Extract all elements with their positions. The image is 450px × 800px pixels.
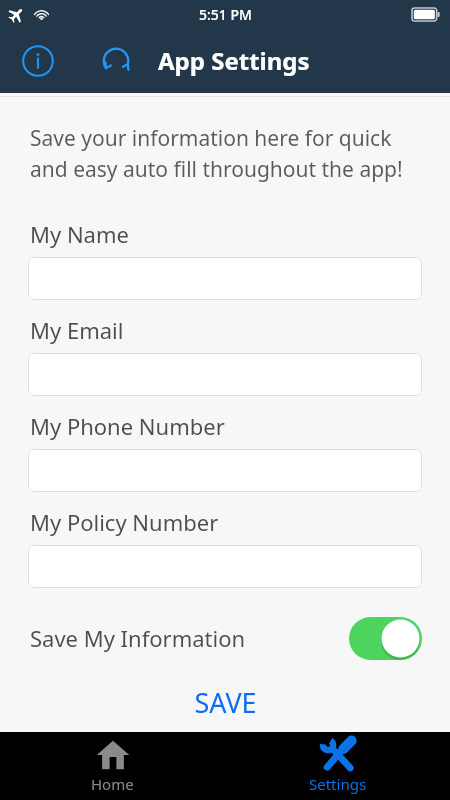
- button[interactable]: SAVE: [0, 684, 450, 724]
- button[interactable]: Information: [14, 37, 62, 85]
- button[interactable]: Save My Information toggle: [349, 617, 422, 660]
- staticText: My Policy Number: [30, 507, 219, 537]
- button[interactable]: [28, 449, 422, 492]
- button[interactable]: Settings: [225, 732, 450, 800]
- staticText: Settings: [309, 774, 367, 794]
- button[interactable]: [28, 545, 422, 588]
- staticText: Home: [91, 774, 134, 794]
- staticText: My Phone Number: [30, 411, 225, 441]
- button[interactable]: [28, 353, 422, 396]
- staticText: SAVE: [194, 684, 257, 721]
- staticText: App Settings: [158, 44, 310, 77]
- staticText: My Name: [30, 219, 129, 249]
- staticText: Save your information here for quick and…: [30, 124, 424, 183]
- button[interactable]: Home: [0, 732, 225, 800]
- button[interactable]: [28, 257, 422, 300]
- button[interactable]: Refresh: [92, 37, 140, 85]
- staticText: Save My Information: [30, 623, 246, 653]
- staticText: 5:51 PM: [199, 5, 252, 24]
- staticText: My Email: [30, 315, 124, 345]
